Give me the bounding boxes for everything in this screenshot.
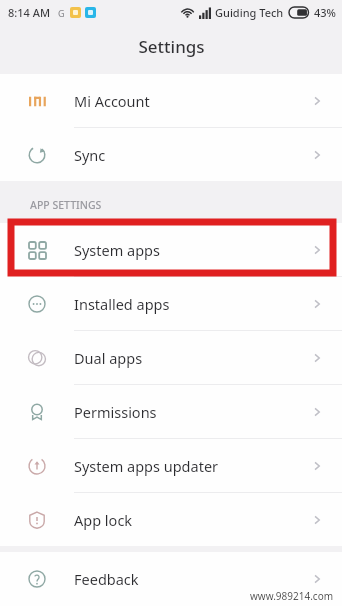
staticText: 43% [314,5,336,20]
staticText: Mi Account [74,91,310,111]
staticText: Dual apps [74,348,310,368]
staticText: Installed apps [74,294,310,314]
button[interactable]: Mi Account [0,74,342,127]
button[interactable]: System apps updater [0,439,342,492]
button[interactable]: Permissions [0,385,342,438]
staticText: APP SETTINGS [30,198,102,212]
staticText: System apps [74,240,310,260]
button[interactable]: System apps [0,223,342,276]
staticText: Permissions [74,402,310,422]
button[interactable]: Dual apps [0,331,342,384]
staticText: Settings [138,35,205,58]
staticText: System apps updater [74,456,310,476]
staticText: Sync [74,145,310,165]
staticText: Feedback [74,569,310,589]
staticText: www.989214.com [250,589,334,603]
staticText: Guiding Tech [215,5,284,20]
staticText: 8:14 AM [8,5,51,20]
button[interactable]: Feedback [0,552,342,605]
staticText: App lock [74,510,310,530]
button[interactable]: Sync [0,128,342,181]
button[interactable]: App lock [0,493,342,546]
button[interactable]: Installed apps [0,277,342,330]
staticText: G [58,7,65,19]
